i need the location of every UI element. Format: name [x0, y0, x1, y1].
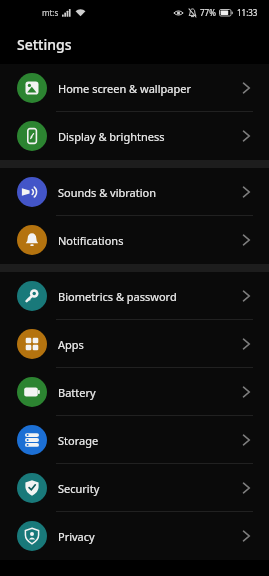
- button[interactable]: Sounds & vibration: [0, 168, 269, 216]
- staticText: Battery: [58, 385, 96, 400]
- button[interactable]: Home screen & wallpaper: [0, 64, 269, 112]
- button[interactable]: Apps: [0, 320, 269, 368]
- staticText: 11:33: [237, 7, 258, 18]
- button[interactable]: Security: [0, 464, 269, 512]
- staticText: Home screen & wallpaper: [58, 81, 191, 96]
- staticText: Settings: [17, 35, 72, 54]
- staticText: Privacy: [58, 529, 95, 544]
- staticText: Security: [58, 481, 100, 496]
- button[interactable]: Display & brightness: [0, 112, 269, 160]
- staticText: Notifications: [58, 233, 124, 248]
- button[interactable]: Notifications: [0, 216, 269, 264]
- staticText: mt:s: [42, 7, 59, 18]
- button[interactable]: Storage: [0, 416, 269, 464]
- staticText: Sounds & vibration: [58, 185, 157, 200]
- staticText: Apps: [58, 337, 84, 352]
- staticText: 77%: [200, 7, 216, 18]
- staticText: Display & brightness: [58, 129, 165, 144]
- button[interactable]: Biometrics & password: [0, 272, 269, 320]
- button[interactable]: Privacy: [0, 512, 269, 560]
- button[interactable]: Battery: [0, 368, 269, 416]
- staticText: Biometrics & password: [58, 289, 177, 304]
- staticText: Storage: [58, 433, 99, 448]
